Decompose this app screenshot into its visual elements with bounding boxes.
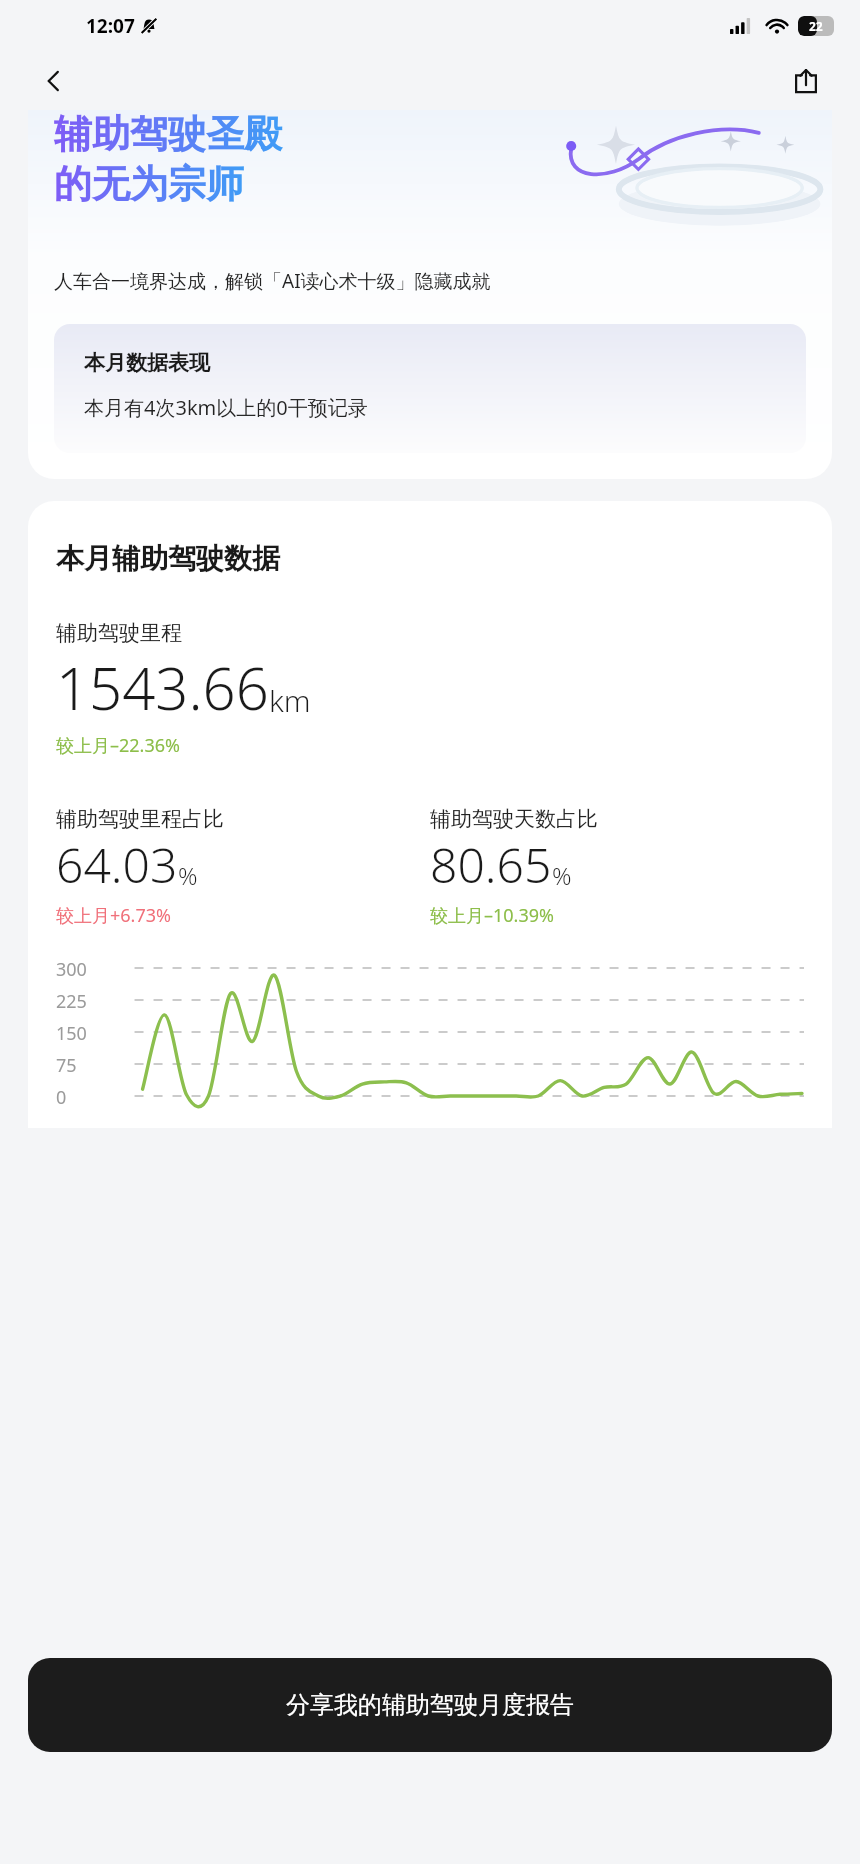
staticText: 本月辅助驾驶数据 — [56, 541, 280, 576]
staticText: 75 — [56, 1053, 77, 1078]
staticText: 较上月+6.73% — [56, 903, 171, 928]
staticText: 225 — [56, 989, 87, 1014]
staticText: 辅助驾驶圣殿 — [54, 110, 282, 158]
staticText: 较上月–10.39% — [430, 903, 554, 928]
staticText: 的无为宗师 — [54, 160, 244, 208]
staticText: 较上月–22.36% — [56, 733, 180, 758]
staticText: % — [552, 859, 572, 892]
staticText: 人车合一境界达成，解锁「AI读心术十级」隐藏成就 — [54, 268, 491, 294]
staticText: 64.03 — [56, 832, 178, 897]
staticText: 分享我的辅助驾驶月度报告 — [286, 1690, 574, 1720]
staticText: km — [269, 680, 311, 721]
staticText: 辅助驾驶里程占比 — [56, 806, 224, 832]
button[interactable]: 分享我的辅助驾驶月度报告 — [28, 1658, 832, 1752]
button[interactable]: Share — [782, 57, 830, 105]
staticText: 辅助驾驶里程 — [56, 620, 182, 646]
staticText: 本月有4次3km以上的0干预记录 — [84, 394, 368, 421]
staticText: 0 — [56, 1085, 67, 1110]
staticText: 300 — [56, 957, 87, 982]
staticText: 80.65 — [430, 832, 552, 897]
staticText: 12:07 — [86, 13, 135, 39]
button[interactable]: Back — [30, 57, 78, 105]
staticText: 22 — [809, 18, 823, 34]
staticText: 本月数据表现 — [84, 350, 210, 376]
staticText: 辅助驾驶天数占比 — [430, 806, 598, 832]
staticText: 1543.66 — [56, 648, 269, 727]
staticText: 150 — [56, 1021, 87, 1046]
staticText: % — [178, 859, 198, 892]
